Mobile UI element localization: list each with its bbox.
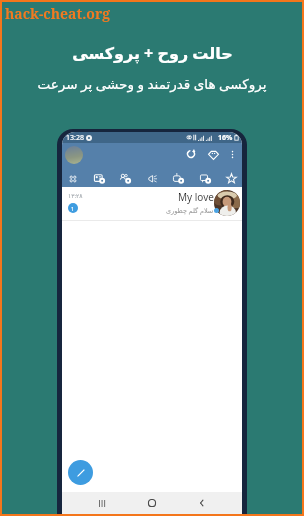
button[interactable]: Unread — [197, 170, 214, 187]
staticText: 16% — [218, 133, 233, 143]
button[interactable]: Refresh — [184, 147, 198, 161]
staticText: ۱۳:۲۸ — [68, 192, 83, 200]
button[interactable]: More options — [226, 148, 238, 160]
staticText: 13:28 — [66, 133, 84, 143]
staticText: hack-cheat.org — [5, 4, 111, 23]
staticText: 1 — [71, 205, 75, 212]
staticText: پروکسی های قدرتمند و وحشی پر سرعت — [37, 75, 267, 93]
button[interactable]: Channels — [144, 170, 161, 187]
staticText: My love — [178, 190, 214, 204]
staticText: حالت روح + پروکسی — [72, 42, 233, 64]
button[interactable]: hack-cheat.org — [5, 3, 111, 23]
button[interactable]: All chats — [64, 170, 81, 187]
button[interactable]: ۱۳:۲۸ — [62, 187, 242, 221]
button[interactable]: New message — [68, 460, 93, 485]
button[interactable]: Favourites — [223, 170, 240, 187]
button[interactable]: Home — [142, 493, 162, 513]
button[interactable]: Back — [192, 493, 212, 513]
button[interactable]: Groups — [117, 170, 134, 187]
button[interactable]: Personal — [91, 170, 108, 187]
button[interactable]: Recents — [92, 493, 112, 513]
staticText: سلام گلم چطوری — [166, 206, 214, 215]
button[interactable]: Bots — [170, 170, 187, 187]
button[interactable]: Proxy — [206, 147, 220, 161]
